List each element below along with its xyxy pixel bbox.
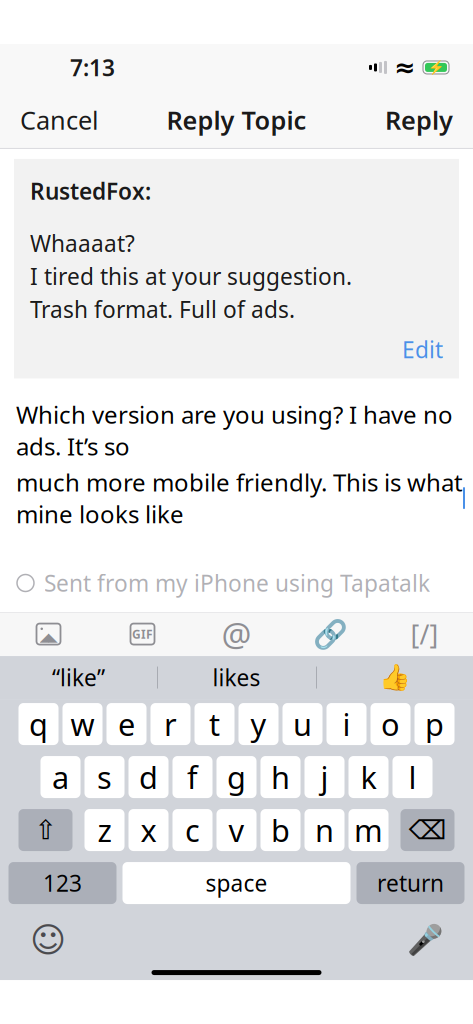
button[interactable]: Dictation [395, 918, 455, 962]
staticText: [/] [410, 616, 438, 652]
button[interactable]: space [122, 862, 350, 904]
staticText: s [97, 757, 112, 797]
staticText: j [320, 757, 328, 797]
button[interactable]: o [370, 703, 410, 745]
button[interactable]: Attach file [283, 612, 377, 656]
button[interactable]: Cancel [0, 91, 119, 149]
staticText: y [250, 704, 266, 744]
staticText: u [293, 704, 312, 744]
staticText: return [377, 868, 444, 898]
button[interactable]: Delete [400, 809, 454, 851]
button[interactable]: m [348, 809, 388, 851]
staticText: ⚡ [427, 60, 444, 75]
button[interactable]: Insert BBCode [377, 612, 471, 656]
staticText: Edit [402, 334, 443, 364]
staticText: ☺ [30, 920, 66, 960]
staticText: likes [212, 662, 260, 693]
staticText: Which version are you using? I have no a… [16, 398, 453, 462]
staticText: m [354, 810, 383, 850]
button[interactable]: 👍 [316, 656, 473, 699]
staticText: n [315, 810, 334, 850]
staticText: @ [221, 612, 251, 656]
staticText: a [52, 757, 69, 797]
staticText: 🎤 [406, 923, 443, 957]
button[interactable]: x [128, 809, 168, 851]
button[interactable]: f [172, 756, 212, 798]
staticText: q [29, 704, 48, 744]
staticText: x [140, 810, 156, 850]
button[interactable]: g [216, 756, 256, 798]
staticText: ⌫ [408, 815, 446, 845]
button[interactable]: s [84, 756, 124, 798]
button[interactable]: b [260, 809, 300, 851]
staticText: o [381, 704, 400, 744]
staticText: l [408, 757, 416, 797]
staticText: h [271, 757, 290, 797]
button[interactable]: t [194, 703, 234, 745]
staticText: Reply [385, 103, 453, 137]
button[interactable]: p [414, 703, 454, 745]
button[interactable]: d [128, 756, 168, 798]
staticText: ≈ [394, 53, 415, 82]
button[interactable]: Reply [365, 91, 473, 149]
button[interactable]: Shift [18, 809, 72, 851]
button[interactable]: y [238, 703, 278, 745]
staticText: Sent from my iPhone using Tapatalk [44, 568, 430, 598]
button[interactable]: likes [157, 656, 316, 699]
button[interactable]: Emoji keyboard [18, 918, 78, 962]
staticText: Cancel [20, 103, 99, 137]
staticText: Reply Topic [166, 103, 306, 137]
staticText: 🔗 [313, 618, 348, 650]
staticText: v [228, 810, 244, 850]
staticText: 123 [43, 868, 82, 898]
button[interactable]: l [392, 756, 432, 798]
button[interactable]: 123 [8, 862, 116, 904]
button[interactable]: Insert photo [1, 612, 95, 656]
button[interactable]: u [282, 703, 322, 745]
staticText: p [425, 704, 444, 744]
staticText: k [360, 757, 376, 797]
button[interactable]: return [356, 862, 464, 904]
button[interactable]: z [84, 809, 124, 851]
staticText: GIF [132, 626, 153, 642]
staticText: Whaaaat? [30, 228, 135, 258]
staticText: f [187, 757, 198, 797]
staticText: w [70, 704, 94, 744]
button[interactable]: Sent from my iPhone using Tapatalk [0, 562, 430, 604]
staticText: 7:13 [70, 52, 115, 82]
button[interactable]: j [304, 756, 344, 798]
staticText: I tired this at your suggestion. [30, 261, 352, 291]
staticText: RustedFox: [30, 176, 151, 206]
button[interactable]: k [348, 756, 388, 798]
button[interactable]: a [40, 756, 80, 798]
staticText: much more mobile friendly. This is what … [16, 466, 463, 530]
staticText: Trash format. Full of ads. [30, 294, 295, 324]
button[interactable]: Mention user [189, 612, 283, 656]
staticText: b [271, 810, 290, 850]
staticText: ⇧ [34, 815, 56, 845]
staticText: “like” [52, 662, 105, 693]
staticText: d [139, 757, 158, 797]
button[interactable]: Edit [402, 334, 443, 364]
staticText: c [185, 810, 200, 850]
button[interactable]: q [18, 703, 58, 745]
staticText: t [209, 704, 220, 744]
button[interactable]: v [216, 809, 256, 851]
button[interactable]: Insert GIF [95, 612, 189, 656]
staticText: i [342, 704, 350, 744]
button[interactable]: c [172, 809, 212, 851]
staticText: e [118, 704, 135, 744]
staticText: g [227, 757, 246, 797]
staticText: z [97, 810, 111, 850]
button[interactable]: i [326, 703, 366, 745]
button[interactable]: n [304, 809, 344, 851]
button[interactable]: h [260, 756, 300, 798]
staticText: space [205, 868, 267, 898]
button[interactable]: r [150, 703, 190, 745]
staticText: ◢◣ [39, 630, 57, 644]
staticText: r [164, 704, 177, 744]
button[interactable]: “like” [0, 656, 157, 699]
button[interactable]: w [62, 703, 102, 745]
button[interactable]: e [106, 703, 146, 745]
staticText: 👍 [378, 663, 410, 692]
